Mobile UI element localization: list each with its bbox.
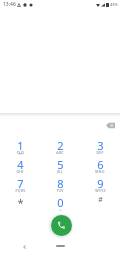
button[interactable]: 5 (40, 157, 80, 176)
button[interactable]: * (0, 195, 40, 214)
staticText: 13:46 (3, 1, 16, 8)
staticText: WXYZ (95, 188, 106, 193)
staticText: ABC (56, 150, 64, 155)
staticText: 7 (17, 176, 24, 191)
button[interactable]: 1 (0, 138, 40, 157)
staticText: TUV (56, 188, 64, 193)
staticText: # (98, 195, 103, 205)
staticText: DEF (96, 150, 104, 155)
staticText: MNO (95, 169, 105, 174)
staticText: JKL (57, 169, 63, 174)
staticText: 0 (57, 195, 64, 210)
button[interactable]: 8 (40, 176, 80, 195)
staticText: 6 (97, 157, 104, 172)
staticText: GHI (16, 169, 24, 174)
staticText: * (17, 195, 24, 210)
button[interactable]: 0 (40, 195, 80, 214)
button[interactable]: 2 (40, 138, 80, 157)
staticText: 2 (57, 138, 64, 153)
button[interactable]: # (80, 195, 120, 214)
staticText: + (59, 207, 62, 212)
staticText: 5 (57, 157, 64, 172)
button[interactable]: 7 (0, 176, 40, 195)
staticText: 43% (110, 2, 118, 7)
staticText: 3 (97, 138, 104, 153)
staticText: PQRS (15, 188, 26, 193)
button[interactable]: 3 (80, 138, 120, 157)
button[interactable]: 6 (80, 157, 120, 176)
button[interactable]: Back (16, 240, 32, 254)
button[interactable]: Home (56, 245, 65, 247)
staticText: 8 (57, 176, 64, 191)
button[interactable]: 4 (0, 157, 40, 176)
staticText: 9 (97, 176, 104, 191)
staticText: 1 (17, 138, 24, 153)
button[interactable]: Backspace (102, 117, 118, 133)
staticText: 4 (17, 157, 24, 172)
button[interactable]: Call (51, 215, 72, 236)
button[interactable]: 9 (80, 176, 120, 195)
